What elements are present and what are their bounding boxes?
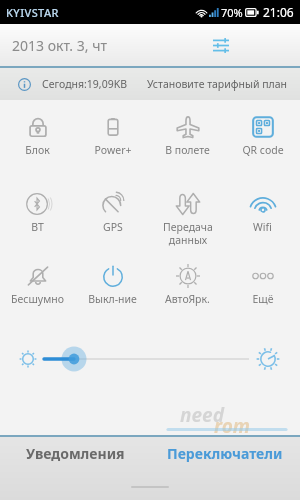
staticText: Сегодня:19,09KB <box>42 77 127 91</box>
staticText: Power+ <box>94 143 132 157</box>
button[interactable]: Ещё <box>225 264 300 336</box>
button[interactable]: GPS <box>75 192 150 264</box>
staticText: GPS <box>103 220 123 234</box>
staticText: 70% <box>221 5 243 20</box>
staticText: Выкл-ние <box>88 292 137 306</box>
button[interactable]: АвтоЯрк. <box>150 264 225 336</box>
button[interactable]: Выкл-ние <box>75 264 150 336</box>
staticText: 21:06 <box>263 4 294 20</box>
staticText: QR code <box>242 143 284 157</box>
staticText: Переключатели <box>167 444 283 463</box>
staticText: В полете <box>165 143 210 157</box>
button[interactable]: Brightness <box>0 339 300 379</box>
staticText: Wifi <box>253 220 272 234</box>
staticText: need <box>180 402 224 428</box>
staticText: Передача данных <box>163 220 213 247</box>
button[interactable]: Передача данных <box>150 192 225 264</box>
staticText: Уведомления <box>26 444 125 463</box>
staticText: BT <box>31 220 44 234</box>
button[interactable]: Переключатели <box>150 437 300 470</box>
staticText: rom <box>214 413 250 439</box>
staticText: 2013 окт. 3, чт <box>12 36 107 55</box>
staticText: www.need-rom.com <box>181 432 267 444</box>
staticText: Блок <box>25 143 50 157</box>
staticText: Установите тарифный план <box>147 77 287 91</box>
staticText: KYIVSTAR <box>6 5 59 20</box>
staticText: Ещё <box>252 292 274 306</box>
button[interactable]: Бесшумно <box>0 264 75 336</box>
button[interactable]: Power+ <box>75 115 150 192</box>
button[interactable]: Блок <box>0 115 75 192</box>
button[interactable]: Сегодня:19,09KB <box>0 68 300 100</box>
button[interactable]: В полете <box>150 115 225 192</box>
staticText: АвтоЯрк. <box>165 292 210 306</box>
button[interactable]: Wifi <box>225 192 300 264</box>
button[interactable]: QR code <box>225 115 300 192</box>
button[interactable]: Уведомления <box>0 437 150 470</box>
staticText: Бесшумно <box>11 292 64 306</box>
button[interactable]: BT <box>0 192 75 264</box>
button[interactable]: Quick settings <box>204 28 238 62</box>
